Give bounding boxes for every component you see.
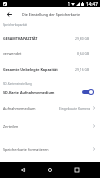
button[interactable]: SD-Karte Aufnahmemedium — [0, 86, 100, 98]
button[interactable]: Zerteilen — [0, 120, 100, 132]
button[interactable]: Home — [40, 162, 60, 178]
staticText: verwendet — [3, 51, 77, 56]
staticText: 29,16 GB — [75, 67, 90, 72]
staticText: Speicherkapazität — [3, 23, 28, 27]
button[interactable]: Recent apps — [67, 162, 87, 178]
staticText: Speicherkarte formatieren — [3, 147, 91, 152]
staticText: SD-Karte Aufnahmemedium — [3, 90, 81, 95]
staticText: Aufnahmemedium — [3, 106, 59, 111]
staticText: Zerteilen — [3, 124, 91, 129]
staticText: 8,64 GB — [77, 51, 90, 56]
staticText: SD-Karteneinstellung — [3, 82, 32, 86]
staticText: Die Einstellung der Speicherkarte — [22, 12, 80, 17]
staticText: Eingebaute Kamera — [59, 106, 91, 111]
button[interactable]: Back — [0, 7, 18, 21]
button[interactable]: Aufnahmemedium — [0, 102, 100, 114]
button[interactable]: Gesamte Unbelegte Kapazität — [0, 63, 100, 75]
staticText: GESAMTKAPAZITÄT — [3, 36, 75, 41]
button[interactable]: GESAMTKAPAZITÄT — [0, 32, 100, 44]
button[interactable]: Back — [13, 162, 33, 178]
button[interactable]: Speicherkarte formatieren — [0, 143, 100, 155]
staticText: 29,80 GB — [75, 36, 90, 41]
button[interactable]: verwendet — [0, 47, 100, 59]
staticText: 14:47 — [86, 1, 98, 7]
staticText: Gesamte Unbelegte Kapazität — [3, 67, 75, 72]
